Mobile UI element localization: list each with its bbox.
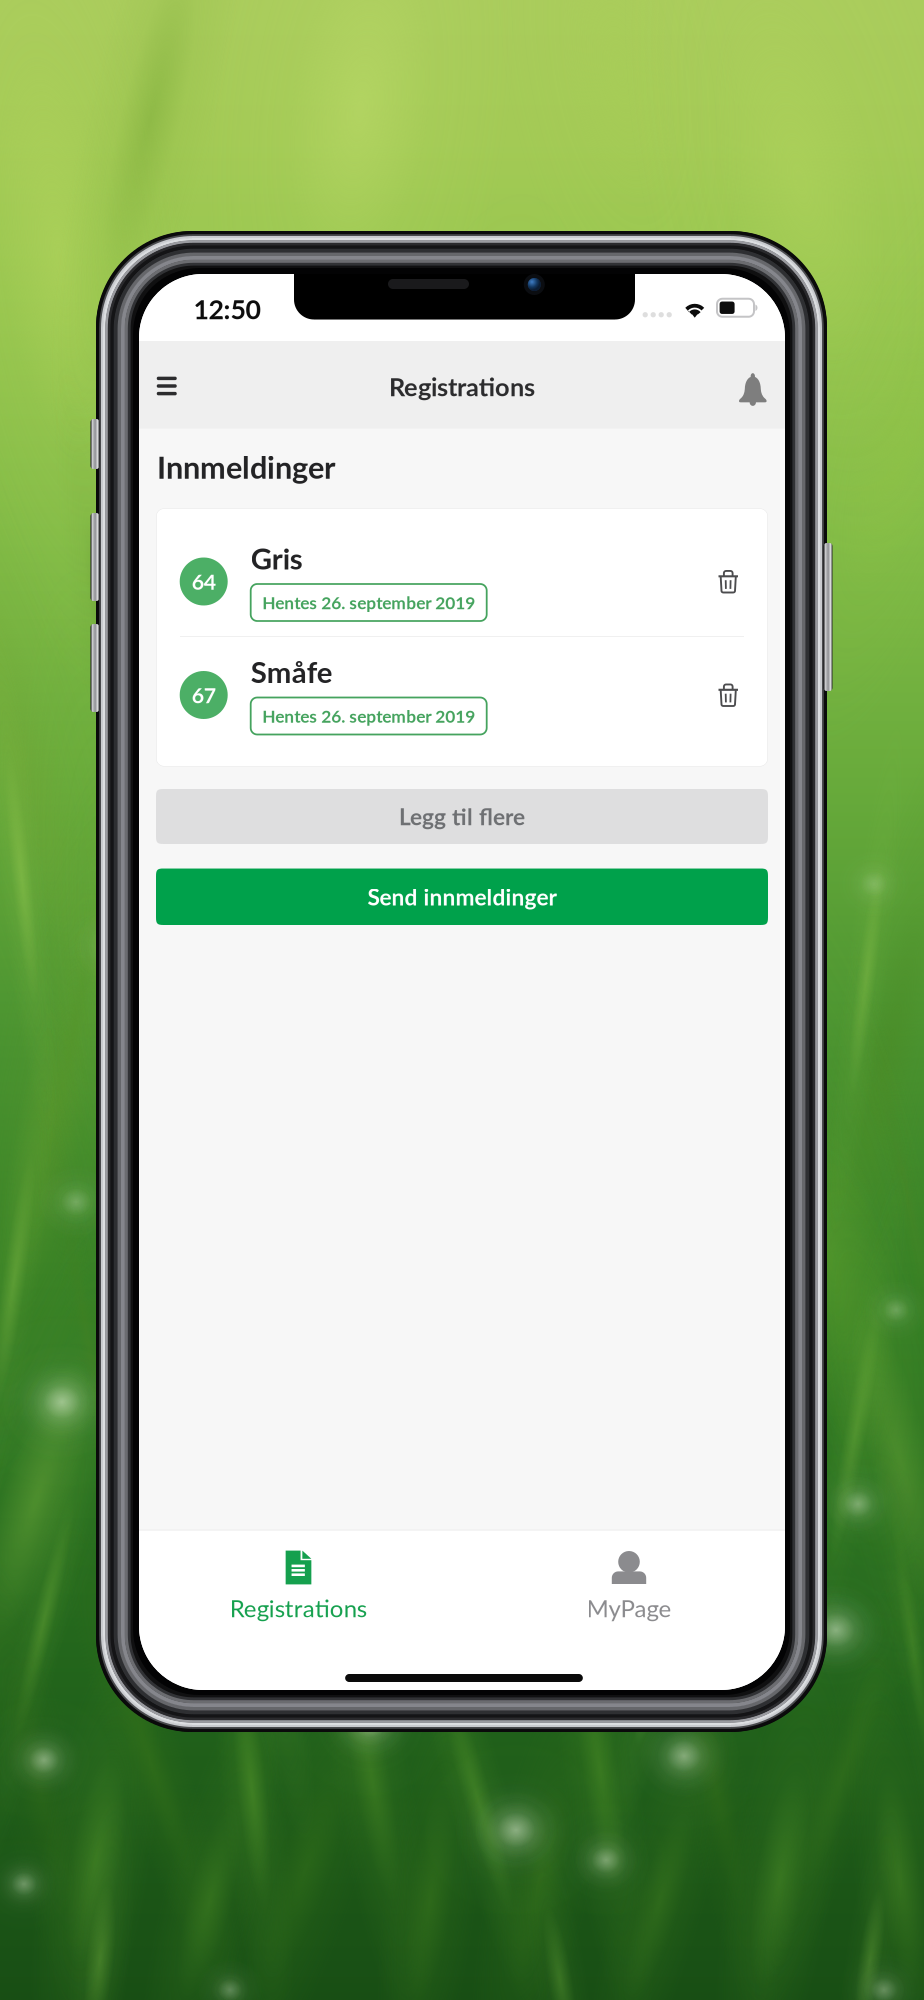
- button[interactable]: Legg til flere: [156, 789, 768, 844]
- button[interactable]: Delete Gris: [691, 539, 765, 623]
- staticText: Registrations: [230, 1593, 367, 1622]
- button[interactable]: Delete Småfe: [691, 653, 765, 737]
- staticText: Innmeldinger: [157, 449, 335, 485]
- button[interactable]: Notifications: [719, 349, 787, 427]
- button[interactable]: Menu: [136, 349, 198, 423]
- staticText: MyPage: [586, 1593, 671, 1622]
- staticText: Registrations: [389, 371, 535, 402]
- staticText: Legg til flere: [399, 803, 525, 830]
- staticText: Småfe: [251, 654, 333, 689]
- button[interactable]: Registrations: [139, 1530, 462, 1640]
- staticText: 12:50: [193, 293, 260, 325]
- staticText: Hentes 26. september 2019: [262, 706, 475, 726]
- staticText: Gris: [251, 541, 303, 576]
- button[interactable]: MyPage: [462, 1530, 785, 1640]
- staticText: Hentes 26. september 2019: [262, 592, 475, 613]
- staticText: Send innmeldinger: [367, 883, 556, 910]
- staticText: 64: [192, 569, 216, 594]
- button[interactable]: Send innmeldinger: [156, 868, 768, 925]
- staticText: 67: [192, 682, 216, 708]
